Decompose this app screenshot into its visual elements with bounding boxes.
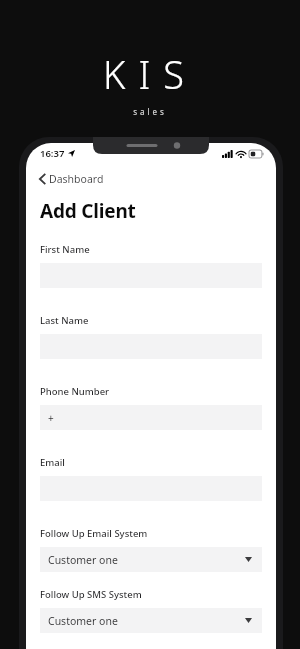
staticText: sales	[133, 106, 167, 117]
staticText: +	[48, 411, 54, 425]
button[interactable]: Back	[36, 170, 110, 188]
staticText: Last Name	[40, 314, 89, 327]
staticText: KIS	[103, 48, 197, 100]
staticText: Phone Number	[40, 385, 110, 398]
staticText: Dashboard	[49, 172, 104, 186]
staticText: Follow Up SMS System	[40, 588, 142, 601]
other: Expand	[245, 557, 252, 562]
staticText: Follow Up Email System	[40, 527, 148, 540]
staticText: First Name	[40, 243, 90, 256]
staticText: Customer one	[48, 553, 118, 567]
staticText: Customer one	[48, 614, 118, 628]
staticText: Add Client	[40, 198, 136, 224]
other: Back	[39, 173, 46, 185]
staticText: 16:37	[40, 147, 65, 160]
button[interactable]: Customer one	[40, 608, 262, 633]
other: Expand	[245, 618, 252, 623]
button[interactable]: Customer one	[40, 547, 262, 572]
button[interactable]: +	[40, 405, 262, 430]
staticText: Email	[40, 456, 65, 469]
